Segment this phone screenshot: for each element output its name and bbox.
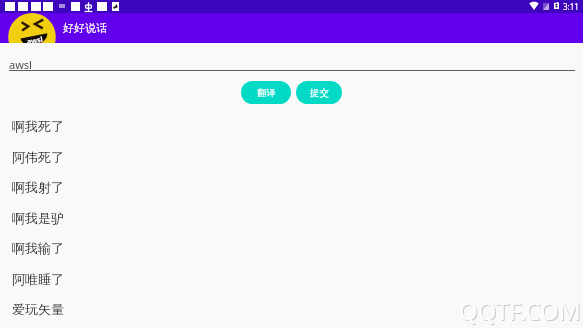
button[interactable]: 翻译 <box>241 81 291 104</box>
staticText: QQTF.COM <box>460 295 582 328</box>
staticText: 好好说话 <box>63 21 107 35</box>
staticText: 啊我是驴 <box>12 210 64 226</box>
staticText: 阿唯睡了 <box>12 271 64 287</box>
staticText: 啊我射了 <box>12 179 64 195</box>
staticText: 翻译 <box>257 87 276 99</box>
button[interactable]: 爱玩矢量 <box>0 293 583 324</box>
button[interactable]: 啊我死了 <box>0 110 583 141</box>
staticText: QQTF.COM <box>459 294 581 327</box>
staticText: 啊我死了 <box>12 118 64 134</box>
button[interactable]: App icon <box>0 13 583 43</box>
button[interactable]: 啊我射了 <box>0 171 583 202</box>
button[interactable]: 啊我是驴 <box>0 202 583 233</box>
staticText: 啊我输了 <box>12 240 64 256</box>
button[interactable]: 提交 <box>296 81 342 104</box>
button[interactable]: 啊我输了 <box>0 232 583 263</box>
button[interactable]: 阿伟死了 <box>0 141 583 172</box>
staticText: 阿伟死了 <box>12 149 64 165</box>
staticText: 爱玩矢量 <box>12 301 64 317</box>
staticText: 3:11 <box>563 1 579 12</box>
button[interactable]: 阿唯睡了 <box>0 263 583 294</box>
staticText: awsl <box>26 35 44 43</box>
staticText: awsl <box>9 57 32 72</box>
staticText: 提交 <box>310 87 329 99</box>
